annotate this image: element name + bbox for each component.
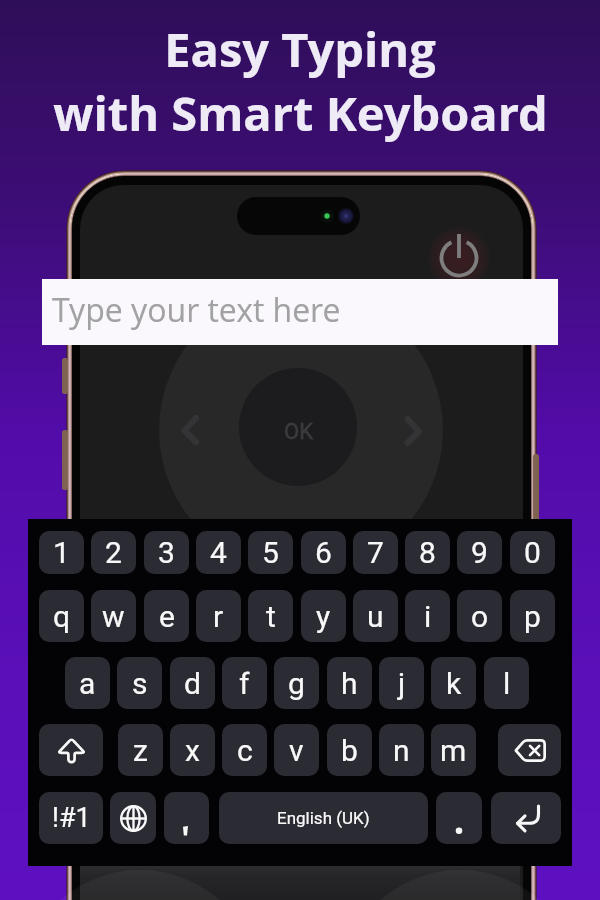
button[interactable]: 1 <box>39 531 84 574</box>
staticText: p <box>524 599 541 634</box>
button[interactable]: w <box>91 590 136 642</box>
staticText: f <box>239 666 250 701</box>
staticText: q <box>53 599 71 634</box>
button[interactable]: b <box>327 724 372 776</box>
staticText: 9 <box>471 535 488 570</box>
staticText: !#1 <box>52 802 91 834</box>
button[interactable]: 9 <box>457 531 502 574</box>
button[interactable]: 5 <box>248 531 293 574</box>
staticText: 4 <box>210 535 227 570</box>
button[interactable]: h <box>327 657 372 709</box>
button[interactable]: Type your text here <box>42 279 558 345</box>
button[interactable]: Enter <box>491 792 561 844</box>
staticText: o <box>471 599 489 634</box>
button[interactable]: l <box>484 657 529 709</box>
button[interactable]: q <box>39 590 84 642</box>
button[interactable]: y <box>301 590 346 642</box>
staticText: Type your text here <box>52 288 341 332</box>
staticText: 1 <box>53 535 70 570</box>
staticText: k <box>446 666 462 701</box>
button[interactable]: c <box>222 724 267 776</box>
button[interactable]: 8 <box>405 531 450 574</box>
staticText: t <box>266 599 276 634</box>
staticText: English (UK) <box>277 808 370 828</box>
button[interactable]: f <box>222 657 267 709</box>
staticText: a <box>79 666 96 701</box>
staticText: s <box>132 666 148 701</box>
staticText: m <box>440 733 467 768</box>
staticText: g <box>288 666 305 701</box>
staticText: 3 <box>158 535 175 570</box>
button[interactable]: 0 <box>510 531 555 574</box>
staticText: 7 <box>367 535 384 570</box>
button[interactable]: OK <box>266 416 330 448</box>
staticText: with Smart Keyboard <box>53 81 548 145</box>
staticText: i <box>424 599 432 634</box>
button[interactable]: t <box>248 590 293 642</box>
button[interactable]: v <box>274 724 319 776</box>
button[interactable]: Period <box>436 792 482 844</box>
button[interactable]: English (UK) <box>219 792 428 844</box>
button[interactable]: n <box>379 724 424 776</box>
staticText: h <box>341 666 358 701</box>
button[interactable]: Change language <box>110 792 156 844</box>
button[interactable]: 7 <box>353 531 398 574</box>
button[interactable]: 6 <box>301 531 346 574</box>
button[interactable]: Shift <box>39 724 103 776</box>
staticText: r <box>213 599 224 634</box>
button[interactable]: m <box>431 724 476 776</box>
staticText: x <box>185 733 200 768</box>
staticText: Easy Typing <box>164 17 436 81</box>
staticText: e <box>159 599 175 634</box>
staticText: 5 <box>262 535 279 570</box>
button[interactable]: j <box>379 657 424 709</box>
staticText: 0 <box>524 535 541 570</box>
button[interactable]: 4 <box>196 531 241 574</box>
staticText: j <box>398 666 406 701</box>
staticText: 8 <box>419 535 436 570</box>
button[interactable]: s <box>117 657 162 709</box>
button[interactable]: g <box>274 657 319 709</box>
button[interactable]: e <box>144 590 189 642</box>
staticText: v <box>289 733 304 768</box>
button[interactable]: k <box>431 657 476 709</box>
button[interactable]: r <box>196 590 241 642</box>
button[interactable]: u <box>353 590 398 642</box>
staticText: d <box>184 666 201 701</box>
button[interactable]: d <box>170 657 215 709</box>
button[interactable]: 3 <box>144 531 189 574</box>
staticText: n <box>393 733 410 768</box>
button[interactable]: i <box>405 590 450 642</box>
button[interactable]: p <box>510 590 555 642</box>
staticText: w <box>102 599 125 634</box>
button[interactable]: x <box>170 724 215 776</box>
button[interactable]: !#1 <box>39 792 103 844</box>
button[interactable]: o <box>457 590 502 642</box>
staticText: c <box>237 733 253 768</box>
staticText: 6 <box>315 535 332 570</box>
staticText: y <box>316 599 331 634</box>
button[interactable]: z <box>118 724 163 776</box>
button[interactable]: a <box>65 657 110 709</box>
staticText: b <box>341 733 358 768</box>
staticText: OK <box>284 419 313 445</box>
staticText: z <box>133 733 148 768</box>
button[interactable]: 2 <box>91 531 136 574</box>
staticText: u <box>367 599 384 634</box>
staticText: 2 <box>105 535 122 570</box>
staticText: l <box>503 666 511 701</box>
button[interactable]: Comma <box>164 792 209 844</box>
button[interactable]: Backspace <box>498 724 561 776</box>
